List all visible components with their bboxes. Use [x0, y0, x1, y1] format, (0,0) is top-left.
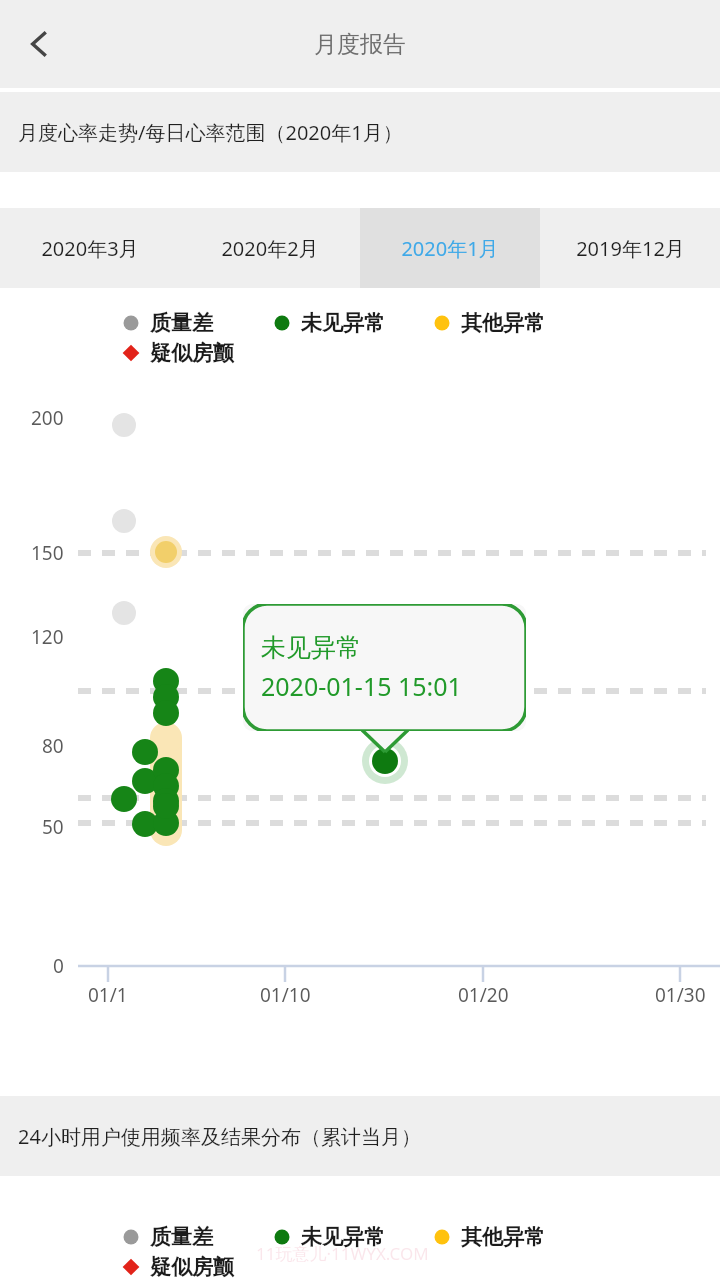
staticText: 01/20 — [458, 982, 509, 1008]
staticText: 01/1 — [88, 982, 128, 1008]
staticText: 2019年12月 — [576, 235, 685, 262]
staticText: 01/10 — [260, 982, 311, 1008]
button[interactable]: 疑似房颤 — [120, 1254, 234, 1280]
staticText: 未见异常 — [301, 1224, 385, 1250]
button[interactable]: 未见异常 — [271, 1224, 385, 1250]
button[interactable]: 2020年3月 — [0, 208, 180, 288]
staticText: 质量差 — [150, 1224, 213, 1250]
staticText: 2020-01-15 15:01 — [261, 669, 462, 703]
button[interactable]: 未见异常 — [243, 604, 526, 731]
button[interactable]: 疑似房颤 — [120, 340, 234, 366]
staticText: 质量差 — [150, 310, 213, 336]
button[interactable]: 质量差 — [120, 310, 213, 336]
staticText: 月度报告 — [314, 30, 406, 59]
staticText: 0 — [53, 953, 64, 979]
staticText: 200 — [31, 405, 64, 431]
staticText: 80 — [42, 733, 64, 759]
staticText: 疑似房颤 — [150, 340, 234, 366]
staticText: 其他异常 — [461, 310, 545, 336]
staticText: 2020年2月 — [221, 235, 319, 262]
button[interactable]: 2020年2月 — [180, 208, 360, 288]
button[interactable]: 2019年12月 — [540, 208, 720, 288]
button[interactable]: Back — [8, 12, 72, 76]
staticText: 2020年1月 — [401, 235, 499, 262]
button[interactable]: 未见异常 — [271, 310, 385, 336]
staticText: 未见异常 — [301, 310, 385, 336]
button[interactable]: 其他异常 — [431, 1224, 545, 1250]
staticText: 50 — [42, 814, 64, 840]
staticText: 月度心率走势/每日心率范围（2020年1月） — [18, 119, 403, 146]
staticText: 未见异常 — [261, 632, 361, 663]
staticText: 11玩意儿·11WYX.COM — [256, 1242, 429, 1265]
staticText: 150 — [31, 540, 64, 566]
button[interactable]: 质量差 — [120, 1224, 213, 1250]
staticText: 120 — [31, 624, 64, 650]
staticText: 2020年3月 — [41, 235, 139, 262]
button[interactable]: 2020年1月 — [360, 208, 540, 288]
staticText: 疑似房颤 — [150, 1254, 234, 1280]
button[interactable]: 其他异常 — [431, 310, 545, 336]
staticText: 其他异常 — [461, 1224, 545, 1250]
staticText: 01/30 — [655, 982, 706, 1008]
staticText: 24小时用户使用频率及结果分布（累计当月） — [18, 1123, 421, 1150]
